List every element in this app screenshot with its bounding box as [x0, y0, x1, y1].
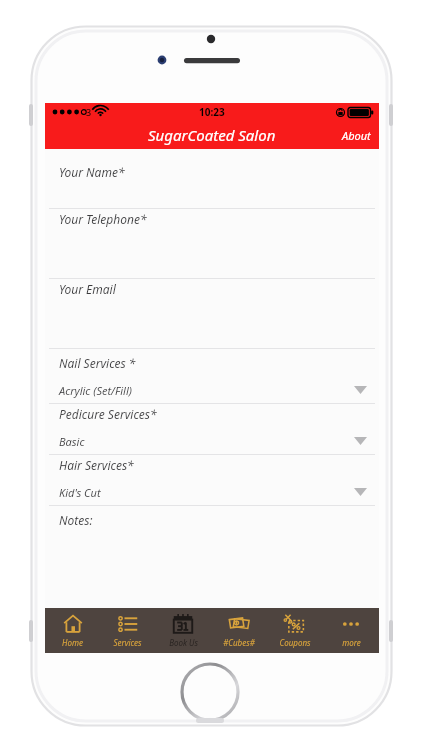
- button[interactable]: Your Email: [45, 279, 379, 349]
- staticText: Kid's Cut: [59, 485, 101, 500]
- button[interactable]: Services: [100, 608, 155, 653]
- button[interactable]: Hair Services*: [45, 455, 379, 506]
- staticText: Basic: [59, 434, 85, 449]
- staticText: Nail Services *: [59, 355, 136, 371]
- staticText: SugarCoated Salon: [148, 125, 276, 145]
- button[interactable]: About: [334, 124, 379, 147]
- staticText: Your Name*: [59, 164, 125, 180]
- button[interactable]: Your Name*: [45, 162, 379, 209]
- staticText: 3: [86, 106, 92, 118]
- button[interactable]: Home: [45, 608, 100, 653]
- button[interactable]: Nail Services *: [45, 353, 379, 404]
- staticText: About: [342, 128, 371, 143]
- button[interactable]: more: [323, 608, 379, 653]
- staticText: Book Us: [169, 637, 198, 648]
- staticText: Pedicure Services*: [59, 406, 157, 422]
- button[interactable]: Your Telephone*: [45, 209, 379, 279]
- staticText: 10:23: [199, 105, 225, 119]
- button[interactable]: Coupons: [267, 608, 323, 653]
- staticText: Acrylic (Set/Fill): [59, 383, 132, 398]
- staticText: Your Email: [59, 281, 116, 297]
- staticText: Notes:: [59, 512, 93, 528]
- staticText: Coupons: [279, 637, 311, 648]
- staticText: Hair Services*: [59, 457, 134, 473]
- staticText: Your Telephone*: [59, 211, 147, 227]
- staticText: #Cubes#: [223, 637, 255, 648]
- staticText: Services: [113, 637, 142, 648]
- staticText: more: [342, 637, 361, 648]
- button[interactable]: #Cubes#: [211, 608, 267, 653]
- staticText: Home: [62, 637, 83, 648]
- button[interactable]: Pedicure Services*: [45, 404, 379, 455]
- button[interactable]: Book Us: [155, 608, 211, 653]
